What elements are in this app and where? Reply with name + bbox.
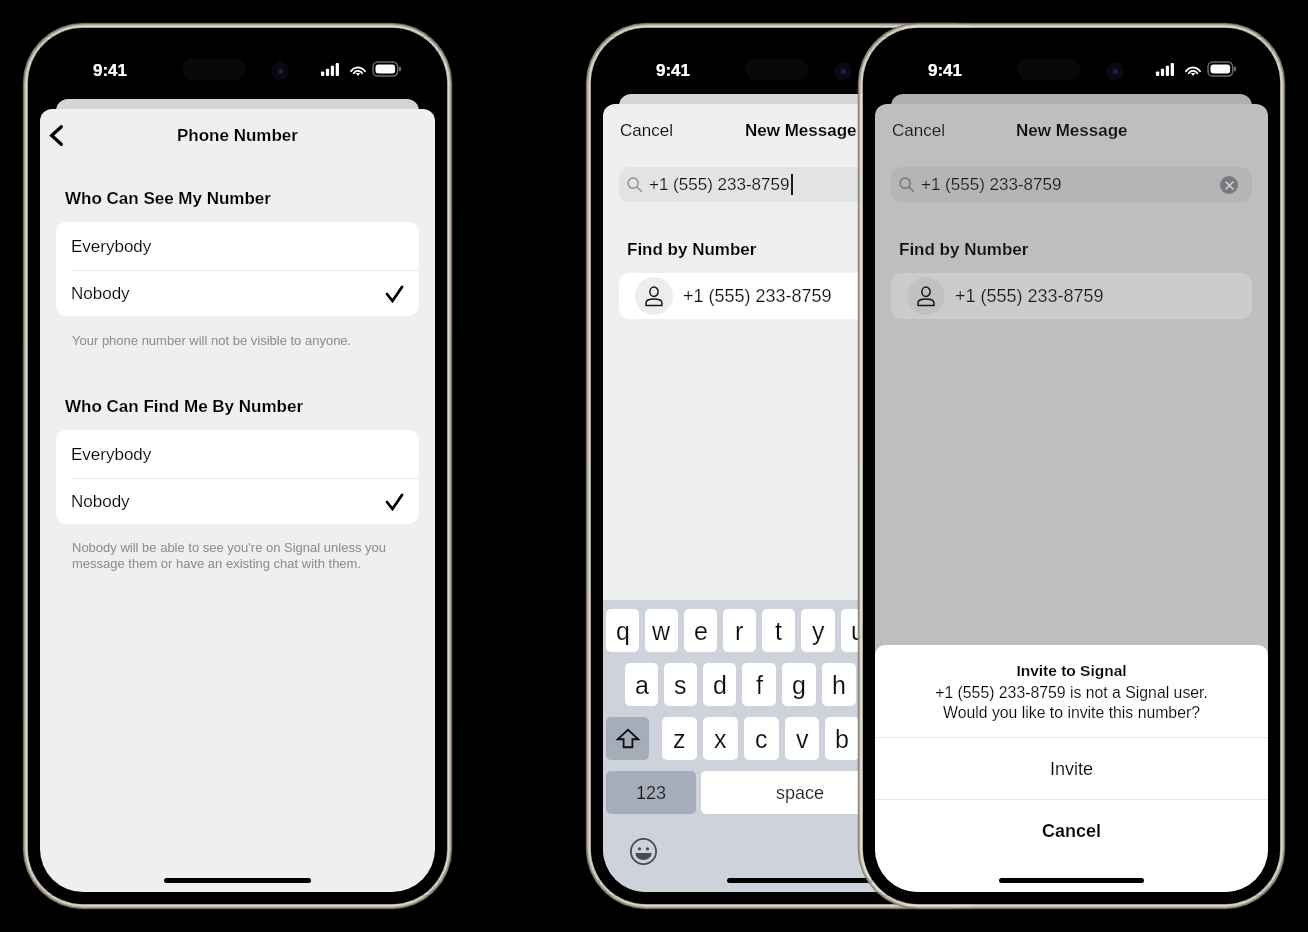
- staticText: Find by Number: [899, 240, 1029, 259]
- staticText: +1 (555) 233-8759 is not a Signal user. …: [875, 684, 1268, 721]
- staticText: +1 (555) 233-8759: [649, 175, 790, 194]
- staticText: Nobody: [71, 284, 130, 303]
- button[interactable]: Emoji keyboard: [630, 838, 657, 865]
- staticText: Your phone number will not be visible to…: [72, 333, 352, 348]
- staticText: Cancel: [892, 121, 945, 140]
- staticText: t: [775, 617, 782, 645]
- button[interactable]: Everybody: [56, 222, 419, 270]
- staticText: y: [812, 617, 825, 645]
- staticText: u: [851, 617, 865, 645]
- button[interactable]: Shift: [606, 717, 649, 760]
- button[interactable]: t: [762, 609, 795, 652]
- button[interactable]: i: [881, 609, 915, 652]
- staticText: h: [832, 671, 846, 699]
- staticText: e: [694, 617, 708, 645]
- staticText: v: [796, 725, 809, 753]
- staticText: l: [956, 671, 962, 699]
- staticText: r: [735, 617, 744, 645]
- button[interactable]: Cancel: [603, 108, 685, 152]
- staticText: return: [926, 783, 974, 803]
- button[interactable]: z: [662, 717, 697, 760]
- staticText: Nobody: [71, 492, 130, 511]
- button[interactable]: e: [684, 609, 717, 652]
- button[interactable]: o: [921, 609, 955, 652]
- staticText: w: [652, 617, 671, 645]
- button[interactable]: s: [664, 663, 697, 706]
- staticText: b: [835, 725, 849, 753]
- staticText: space: [776, 783, 825, 803]
- button[interactable]: d: [703, 663, 736, 706]
- button[interactable]: Nobody: [56, 271, 419, 316]
- button[interactable]: Cancel: [875, 800, 1268, 861]
- staticText: q: [616, 617, 630, 645]
- button[interactable]: c: [744, 717, 779, 760]
- button[interactable]: x: [703, 717, 738, 760]
- button[interactable]: n: [865, 717, 899, 760]
- button[interactable]: Everybody: [56, 430, 419, 478]
- staticText: Cancel: [620, 121, 673, 140]
- staticText: Who Can Find Me By Number: [65, 397, 303, 416]
- button[interactable]: b: [825, 717, 859, 760]
- button[interactable]: +1 (555) 233-8759: [891, 167, 1252, 202]
- staticText: s: [674, 671, 687, 699]
- button[interactable]: r: [723, 609, 756, 652]
- button[interactable]: Back: [40, 119, 72, 151]
- staticText: x: [714, 725, 727, 753]
- staticText: +1 (555) 233-8759: [955, 286, 1104, 306]
- staticText: 9:41: [93, 61, 128, 80]
- staticText: m: [912, 725, 933, 753]
- staticText: Invite: [1050, 759, 1094, 779]
- staticText: Find by Number: [627, 240, 757, 259]
- button[interactable]: a: [625, 663, 658, 706]
- staticText: Phone Number: [177, 126, 298, 145]
- button[interactable]: m: [905, 717, 939, 760]
- staticText: 9:41: [928, 61, 963, 80]
- button[interactable]: f: [742, 663, 776, 706]
- button[interactable]: h: [822, 663, 856, 706]
- button[interactable]: w: [645, 609, 678, 652]
- button[interactable]: u: [841, 609, 875, 652]
- button[interactable]: q: [606, 609, 639, 652]
- button[interactable]: +1 (555) 233-8759: [619, 273, 982, 319]
- button[interactable]: j: [862, 663, 896, 706]
- button[interactable]: v: [785, 717, 819, 760]
- staticText: g: [792, 671, 806, 699]
- button[interactable]: Clear text: [1220, 176, 1238, 194]
- button[interactable]: g: [782, 663, 816, 706]
- staticText: Everybody: [71, 445, 152, 464]
- staticText: +1 (555) 233-8759: [683, 286, 832, 306]
- staticText: New Message: [1016, 121, 1128, 140]
- staticText: c: [755, 725, 768, 753]
- staticText: 9:41: [656, 61, 691, 80]
- staticText: New Message: [745, 121, 857, 140]
- button[interactable]: Cancel: [875, 108, 957, 152]
- button[interactable]: 123: [606, 771, 696, 814]
- staticText: a: [635, 671, 649, 699]
- staticText: f: [756, 671, 763, 699]
- button[interactable]: p: [961, 609, 995, 652]
- button[interactable]: +1 (555) 233-8759: [891, 273, 1252, 319]
- button[interactable]: +1 (555) 233-8759: [619, 167, 982, 202]
- staticText: Who Can See My Number: [65, 189, 271, 208]
- staticText: Everybody: [71, 237, 152, 256]
- button[interactable]: Invite: [875, 738, 1268, 799]
- staticText: n: [875, 725, 889, 753]
- staticText: Invite to Signal: [875, 662, 1268, 679]
- button[interactable]: Nobody: [56, 479, 419, 524]
- staticText: Cancel: [1042, 821, 1102, 841]
- staticText: +1 (555) 233-8759: [921, 175, 1062, 194]
- staticText: z: [673, 725, 686, 753]
- staticText: d: [713, 671, 727, 699]
- button[interactable]: space: [701, 771, 900, 814]
- button[interactable]: y: [801, 609, 835, 652]
- button[interactable]: l: [942, 663, 976, 706]
- button[interactable]: Backspace: [952, 717, 995, 760]
- staticText: Nobody will be able to see you're on Sig…: [72, 540, 386, 571]
- button[interactable]: return: [905, 771, 995, 814]
